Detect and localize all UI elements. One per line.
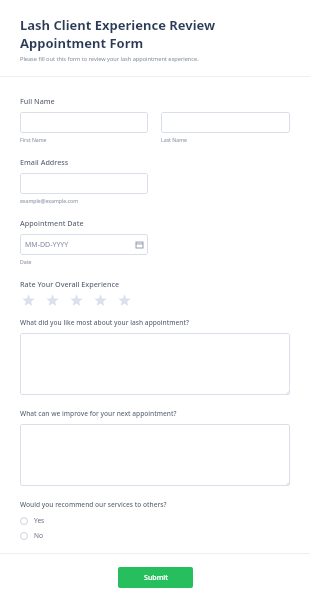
staticText: example@example.com (20, 197, 79, 204)
staticText: No (34, 531, 44, 540)
staticText: What can we improve for your next appoin… (20, 409, 177, 418)
staticText: Email Address (20, 157, 69, 167)
button[interactable] (20, 424, 290, 486)
staticText: First Name (20, 136, 47, 143)
button[interactable]: Rate star (92, 292, 108, 308)
staticText: Appointment Form (20, 34, 144, 52)
button[interactable] (161, 112, 290, 133)
staticText: Yes (34, 516, 45, 525)
button[interactable] (20, 173, 148, 194)
button[interactable]: Rate star (20, 292, 36, 308)
button[interactable] (20, 112, 148, 133)
button[interactable]: No (20, 528, 290, 543)
staticText: What did you like most about your lash a… (20, 318, 189, 327)
staticText: Date (20, 258, 32, 265)
staticText: Rate Your Overall Experience (20, 279, 120, 289)
button[interactable]: Yes (20, 513, 290, 528)
staticText: MM-DD-YYYY (25, 240, 69, 250)
staticText: Submit (144, 573, 168, 583)
staticText: Last Name (161, 136, 187, 143)
button[interactable] (20, 333, 290, 395)
staticText: Lash Client Experience Review (20, 16, 216, 34)
staticText: Full Name (20, 96, 55, 106)
button[interactable]: Rate star (68, 292, 84, 308)
button[interactable]: Rate star (44, 292, 60, 308)
staticText: Please fill out this form to review your… (20, 55, 199, 63)
button[interactable]: Submit (118, 567, 193, 588)
staticText: Would you recommend our services to othe… (20, 500, 167, 509)
button[interactable]: Rate star (116, 292, 132, 308)
staticText: Appointment Date (20, 218, 84, 228)
button[interactable]: MM-DD-YYYY (20, 234, 148, 255)
